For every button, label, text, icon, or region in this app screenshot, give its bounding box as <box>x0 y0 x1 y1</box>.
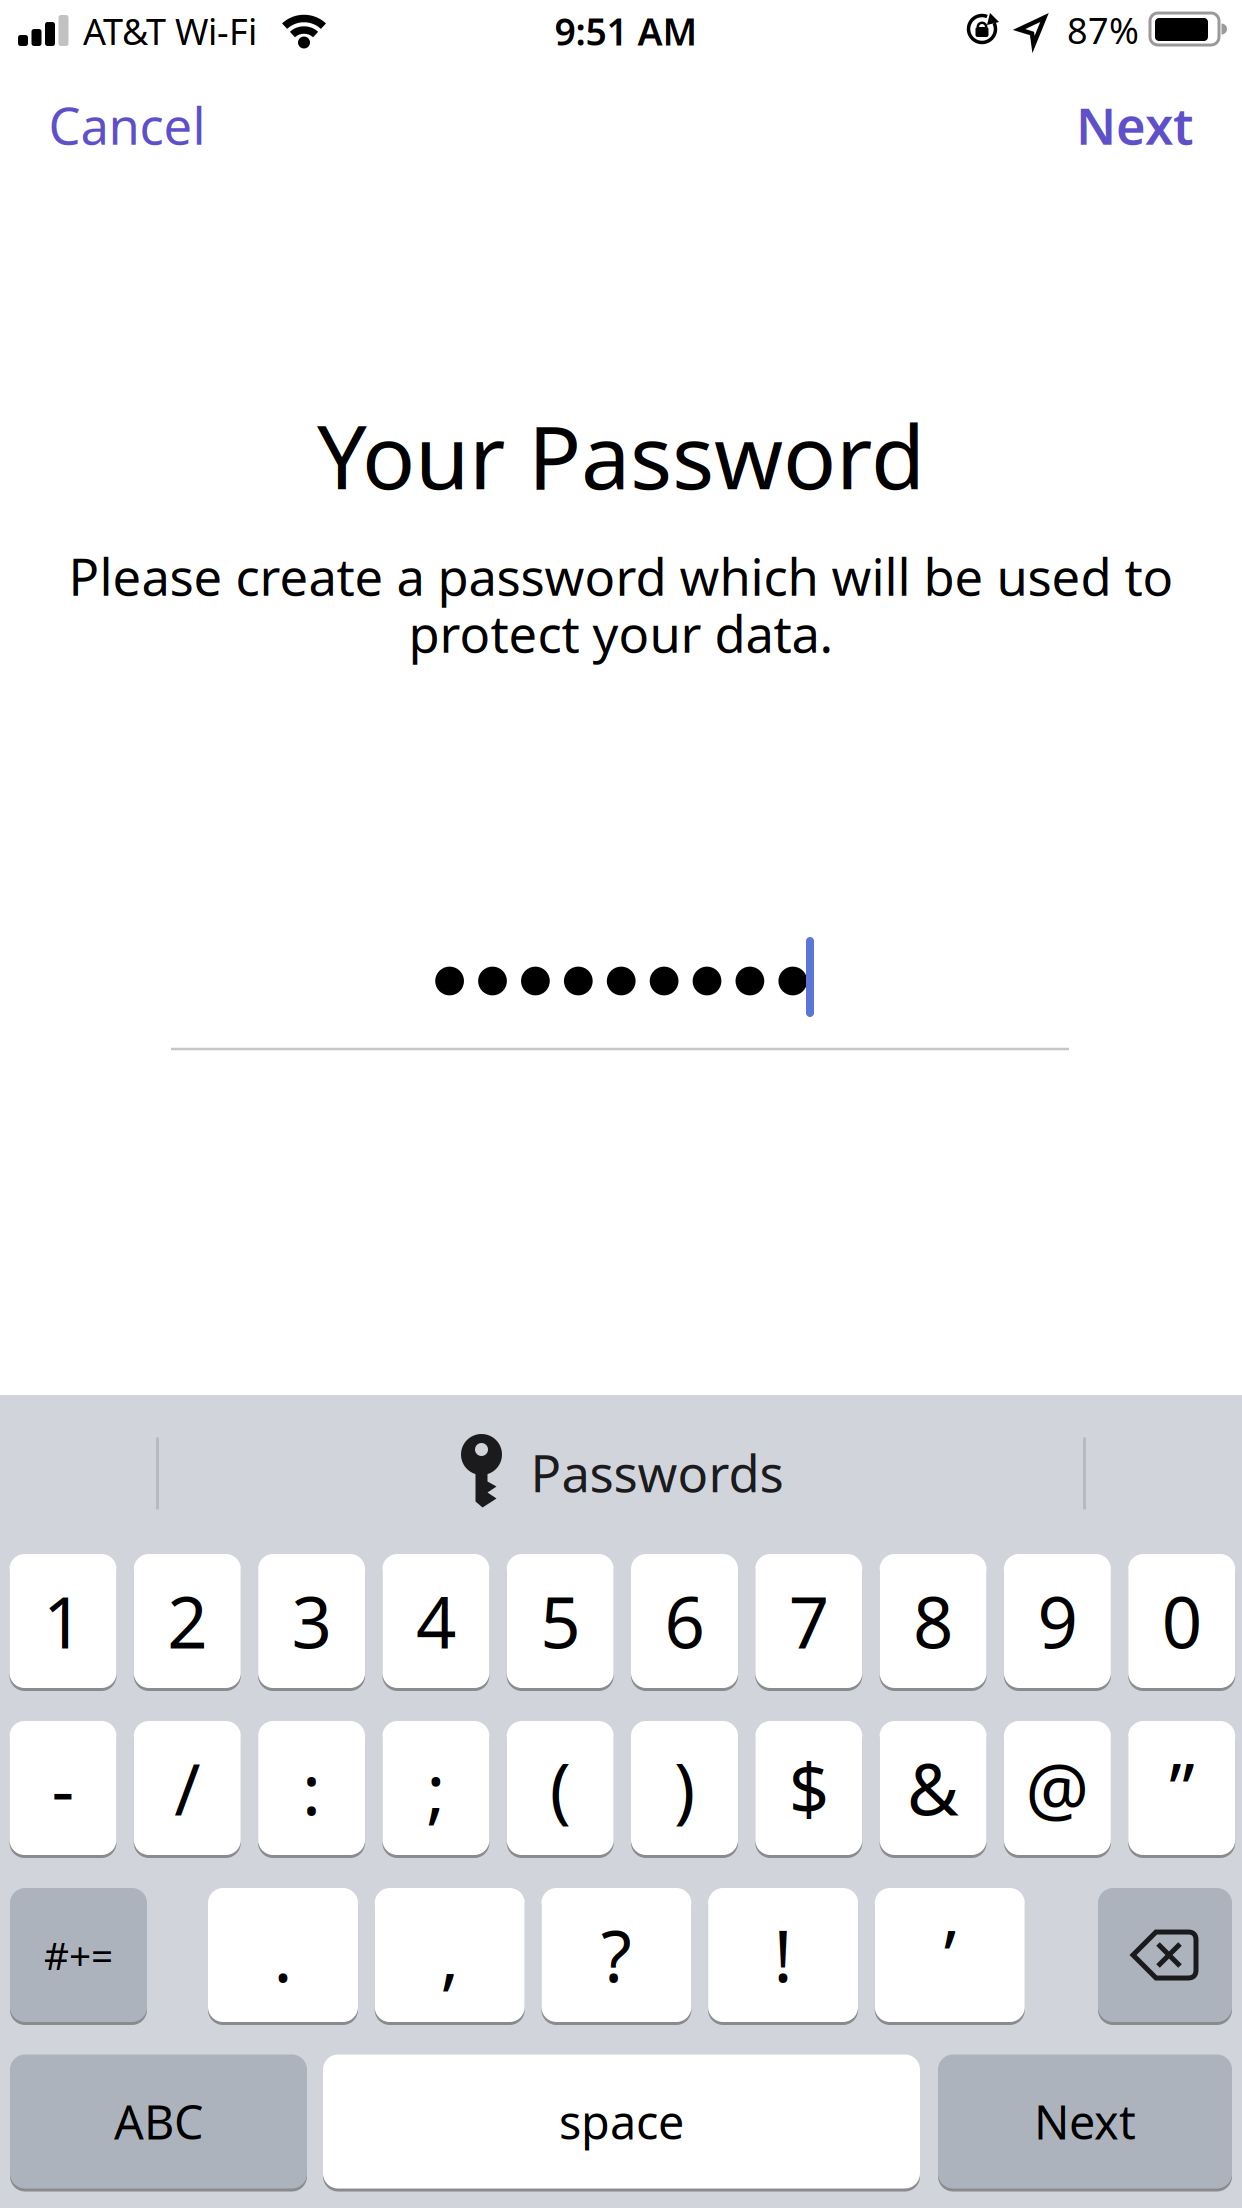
button[interactable]: $ <box>755 1721 862 1855</box>
button[interactable]: , <box>375 1888 525 2022</box>
button[interactable]: ” <box>1128 1721 1235 1855</box>
button[interactable]: Delete <box>1098 1888 1232 2022</box>
staticText: - <box>51 1741 74 1835</box>
button[interactable]: & <box>880 1721 987 1855</box>
staticText: 9 <box>1037 1574 1077 1668</box>
button[interactable]: : <box>258 1721 365 1855</box>
staticText: 5 <box>540 1574 580 1668</box>
button[interactable]: 1 <box>9 1554 116 1688</box>
button[interactable]: 7 <box>755 1554 862 1688</box>
staticText: Next <box>1034 2090 1136 2152</box>
button[interactable]: 0 <box>1128 1554 1235 1688</box>
button[interactable]: Next <box>1076 91 1194 159</box>
button[interactable]: @ <box>1004 1721 1111 1855</box>
button[interactable]: ; <box>382 1721 489 1855</box>
button[interactable]: #+= <box>10 1888 147 2022</box>
staticText: ( <box>550 1741 571 1835</box>
staticText: Passwords <box>530 1439 783 1506</box>
staticText: Your Password <box>317 397 925 513</box>
button[interactable]: Next <box>938 2054 1232 2188</box>
staticText: , <box>440 1908 459 2002</box>
button[interactable]: - <box>9 1721 116 1855</box>
staticText: AT&T Wi-Fi <box>83 7 257 55</box>
button[interactable]: space <box>323 2054 920 2188</box>
button[interactable]: 8 <box>880 1554 987 1688</box>
staticText: 87% <box>1067 6 1139 54</box>
staticText: 4 <box>416 1574 456 1668</box>
staticText: 0 <box>1162 1574 1202 1668</box>
staticText: 1 <box>43 1574 83 1668</box>
staticText: / <box>174 1741 200 1835</box>
staticText: ) <box>674 1741 695 1835</box>
button[interactable]: / <box>134 1721 241 1855</box>
staticText: @ <box>1025 1741 1089 1835</box>
staticText: #+= <box>44 1929 113 1981</box>
staticText: ’ <box>944 1908 956 2002</box>
staticText: ABC <box>114 2090 203 2152</box>
staticText: Cancel <box>48 91 205 159</box>
staticText: protect your data. <box>408 599 833 667</box>
staticText: ; <box>426 1741 445 1835</box>
staticText: : <box>302 1741 321 1835</box>
button[interactable]: ! <box>708 1888 858 2022</box>
staticText: 7 <box>789 1574 829 1668</box>
staticText: Next <box>1076 91 1194 159</box>
button[interactable]: Cancel <box>48 91 205 159</box>
button[interactable]: 3 <box>258 1554 365 1688</box>
button[interactable]: 4 <box>382 1554 489 1688</box>
button[interactable]: ? <box>541 1888 691 2022</box>
button[interactable]: ) <box>631 1721 738 1855</box>
staticText: . <box>273 1908 292 2002</box>
staticText: space <box>559 2090 684 2152</box>
staticText: $ <box>789 1741 829 1835</box>
button[interactable]: Passwords <box>171 1397 1071 1547</box>
staticText: 3 <box>292 1574 332 1668</box>
button[interactable]: . <box>208 1888 358 2022</box>
button[interactable]: ( <box>507 1721 614 1855</box>
staticText: 8 <box>913 1574 953 1668</box>
staticText: ! <box>774 1908 793 2002</box>
staticText: Please create a password which will be u… <box>68 542 1173 610</box>
button[interactable]: 5 <box>507 1554 614 1688</box>
staticText: ? <box>601 1908 632 2002</box>
button[interactable]: 6 <box>631 1554 738 1688</box>
staticText: 9:51 AM <box>554 6 697 56</box>
button[interactable]: ABC <box>10 2054 307 2188</box>
button[interactable]: ’ <box>875 1888 1025 2022</box>
button[interactable]: 9 <box>1004 1554 1111 1688</box>
staticText: ” <box>1169 1741 1194 1835</box>
staticText: & <box>907 1741 959 1835</box>
staticText: 2 <box>167 1574 207 1668</box>
button[interactable]: 2 <box>134 1554 241 1688</box>
staticText: 6 <box>664 1574 704 1668</box>
